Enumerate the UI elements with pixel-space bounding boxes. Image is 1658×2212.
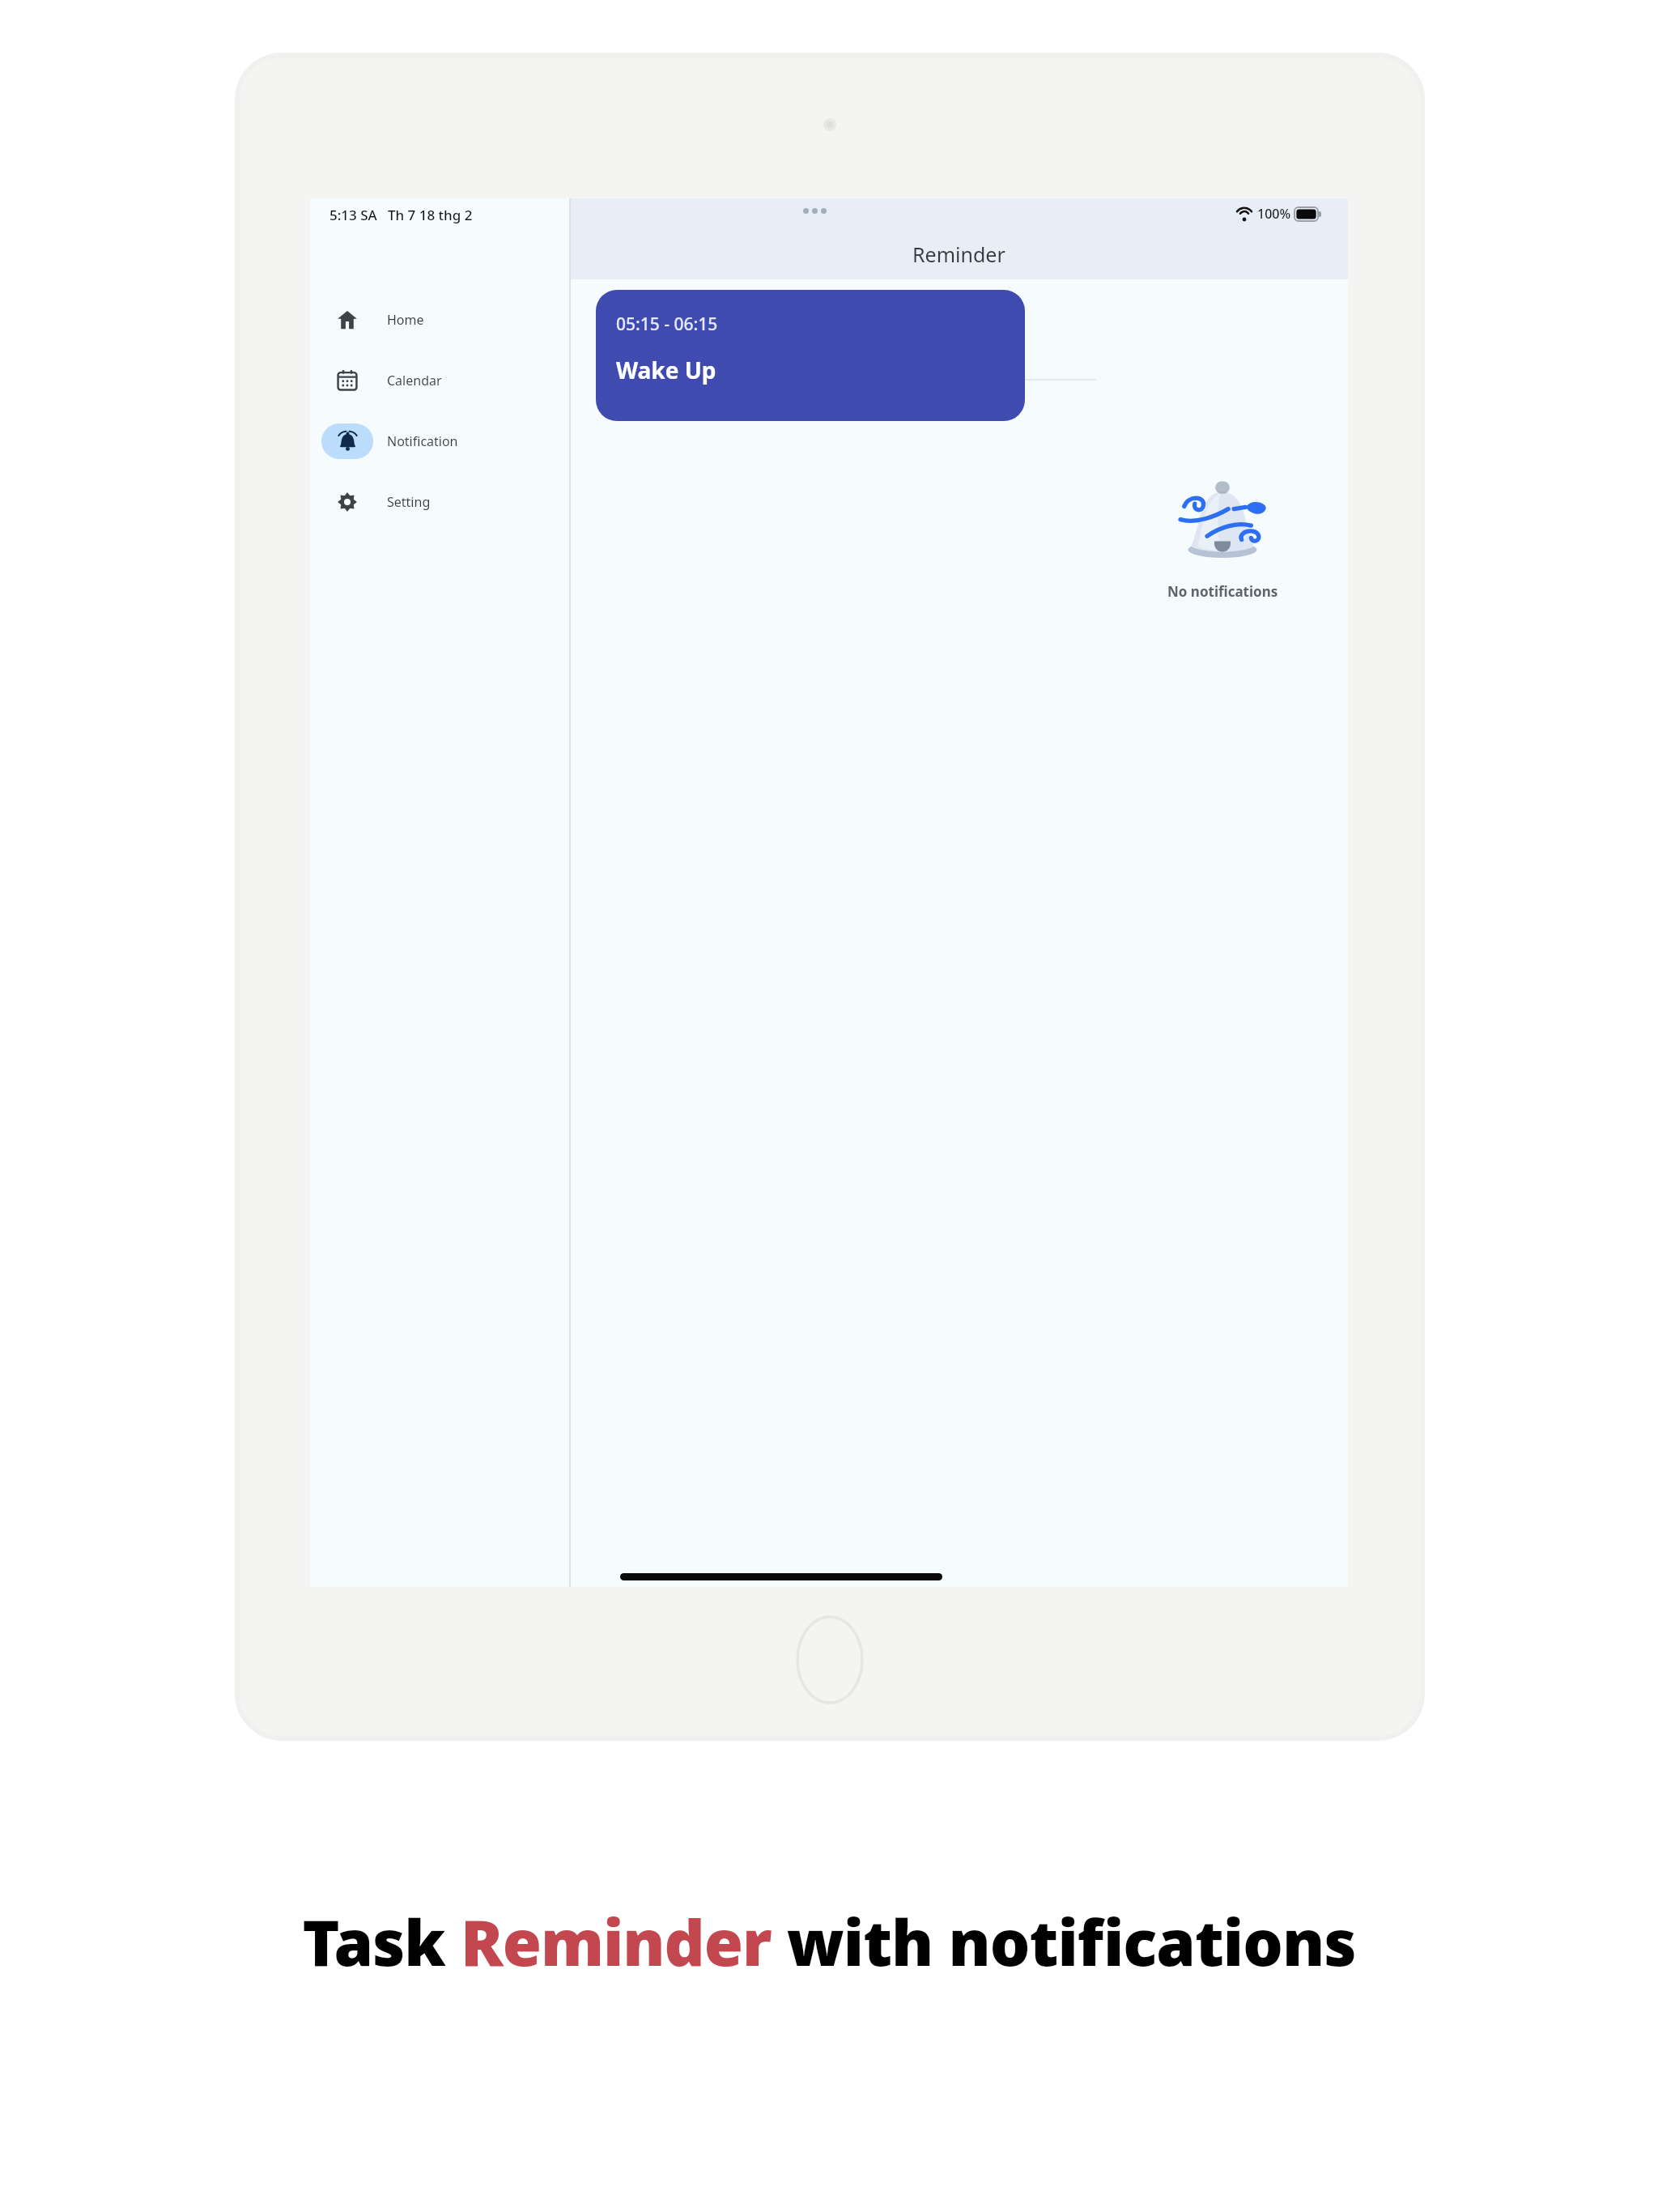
staticText: Calendar bbox=[387, 372, 442, 389]
staticText: No notifications bbox=[1167, 582, 1278, 601]
staticText: 05:15 - 06:15 bbox=[616, 313, 718, 336]
staticText: Wake Up bbox=[616, 355, 716, 385]
staticText: Setting bbox=[387, 493, 431, 511]
staticText: 5:13 SA Th 7 18 thg 2 bbox=[329, 206, 473, 224]
button[interactable]: Home bbox=[310, 299, 569, 341]
button[interactable]: 05:15 - 06:15 bbox=[596, 290, 1025, 421]
staticText: Reminder bbox=[912, 240, 1005, 268]
staticText: Home bbox=[387, 311, 424, 329]
button[interactable]: Setting bbox=[310, 481, 569, 523]
staticText: Task Reminder with notifications bbox=[0, 1899, 1658, 1984]
staticText: Notification bbox=[387, 432, 458, 450]
staticText: 100% bbox=[1257, 205, 1291, 223]
button[interactable]: Calendar bbox=[310, 359, 569, 402]
button[interactable]: Notification bbox=[310, 420, 569, 462]
button[interactable]: More bbox=[803, 208, 827, 214]
